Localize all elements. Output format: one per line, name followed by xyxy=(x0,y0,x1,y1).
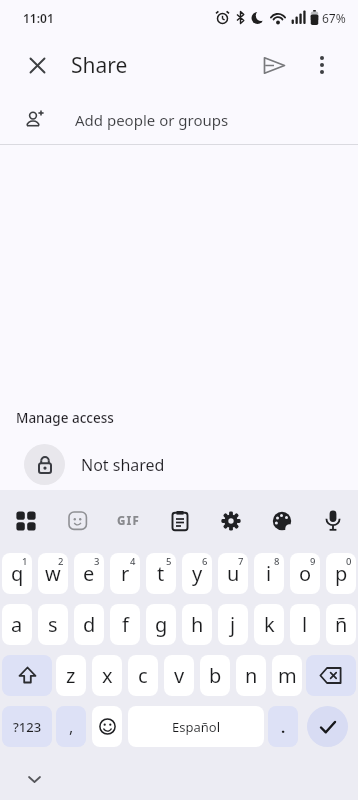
staticText: e xyxy=(83,560,95,587)
staticText: Share xyxy=(71,51,128,80)
staticText: Manage access xyxy=(16,409,114,427)
staticText: 3 xyxy=(94,555,100,568)
button[interactable] xyxy=(92,706,122,747)
button[interactable]: e xyxy=(74,553,104,594)
button[interactable]: u xyxy=(218,553,248,594)
staticText: o xyxy=(299,560,312,587)
staticText: n xyxy=(245,662,258,689)
button[interactable]: z xyxy=(56,655,86,696)
staticText: h xyxy=(191,611,204,638)
staticText: k xyxy=(264,611,275,638)
button[interactable] xyxy=(205,490,256,552)
button[interactable]: m xyxy=(272,655,302,696)
staticText: w xyxy=(45,560,61,587)
button[interactable]: y xyxy=(182,553,212,594)
button[interactable]: j xyxy=(218,604,248,645)
staticText: t xyxy=(157,560,165,587)
button[interactable]: r xyxy=(110,553,140,594)
staticText: x xyxy=(102,662,113,689)
button[interactable]: a xyxy=(2,604,32,645)
staticText: 9 xyxy=(310,555,316,568)
button[interactable] xyxy=(52,490,103,552)
staticText: 7 xyxy=(238,555,244,568)
staticText: 67% xyxy=(322,10,346,26)
staticText: GIF xyxy=(117,513,141,529)
button[interactable] xyxy=(154,490,205,552)
staticText: 0 xyxy=(346,555,352,568)
staticText: Add people or groups xyxy=(75,110,229,130)
staticText: Not shared xyxy=(81,454,165,476)
button[interactable] xyxy=(298,41,346,89)
staticText: v xyxy=(174,662,185,689)
staticText: 1 xyxy=(22,555,28,568)
button[interactable] xyxy=(307,490,358,552)
staticText: j xyxy=(230,611,236,638)
button[interactable] xyxy=(0,490,52,552)
staticText: 8 xyxy=(274,555,280,568)
staticText: b xyxy=(209,662,222,689)
staticText: d xyxy=(83,611,96,638)
staticText: . xyxy=(281,717,286,737)
button[interactable] xyxy=(2,655,52,696)
staticText: p xyxy=(335,560,348,587)
button[interactable]: i xyxy=(254,553,284,594)
button[interactable]: f xyxy=(110,604,140,645)
button[interactable] xyxy=(307,706,348,747)
button[interactable]: Add people or groups xyxy=(0,95,358,144)
button[interactable]: h xyxy=(182,604,212,645)
button[interactable]: . xyxy=(268,706,298,747)
staticText: g xyxy=(155,611,168,638)
button[interactable] xyxy=(306,655,356,696)
staticText: f xyxy=(122,611,129,638)
button[interactable]: v xyxy=(164,655,194,696)
button[interactable]: , xyxy=(56,706,86,747)
staticText: 4 xyxy=(130,555,136,568)
staticText: r xyxy=(121,560,130,587)
staticText: ?123 xyxy=(13,718,42,736)
staticText: m xyxy=(278,662,297,689)
button[interactable]: GIF xyxy=(103,490,154,552)
staticText: a xyxy=(11,611,23,638)
button[interactable]: k xyxy=(254,604,284,645)
button[interactable]: ?123 xyxy=(2,706,52,747)
button[interactable]: l xyxy=(290,604,320,645)
button[interactable]: c xyxy=(128,655,158,696)
staticText: 2 xyxy=(58,555,64,568)
button[interactable]: ñ xyxy=(326,604,356,645)
staticText: s xyxy=(48,611,58,638)
button[interactable]: s xyxy=(38,604,68,645)
staticText: ñ xyxy=(335,611,348,638)
staticText: 6 xyxy=(202,555,208,568)
staticText: z xyxy=(66,662,76,689)
button[interactable]: g xyxy=(146,604,176,645)
staticText: , xyxy=(69,716,74,738)
staticText: l xyxy=(302,611,308,638)
button[interactable]: p xyxy=(326,553,356,594)
button[interactable]: o xyxy=(290,553,320,594)
button[interactable]: Not shared xyxy=(24,444,358,485)
button[interactable]: b xyxy=(200,655,230,696)
button[interactable] xyxy=(13,41,61,89)
staticText: Español xyxy=(172,718,220,736)
staticText: c xyxy=(138,662,148,689)
button[interactable]: w xyxy=(38,553,68,594)
button[interactable]: n xyxy=(236,655,266,696)
staticText: 5 xyxy=(166,555,172,568)
button[interactable] xyxy=(17,762,51,796)
button[interactable] xyxy=(250,41,298,89)
button[interactable] xyxy=(256,490,307,552)
button[interactable]: x xyxy=(92,655,122,696)
staticText: 11:01 xyxy=(23,10,54,26)
staticText: u xyxy=(227,560,240,587)
staticText: q xyxy=(11,560,24,587)
button[interactable]: t xyxy=(146,553,176,594)
button[interactable]: d xyxy=(74,604,104,645)
button[interactable]: q xyxy=(2,553,32,594)
staticText: y xyxy=(192,560,203,587)
staticText: i xyxy=(266,560,272,587)
button[interactable]: Español xyxy=(128,706,264,747)
